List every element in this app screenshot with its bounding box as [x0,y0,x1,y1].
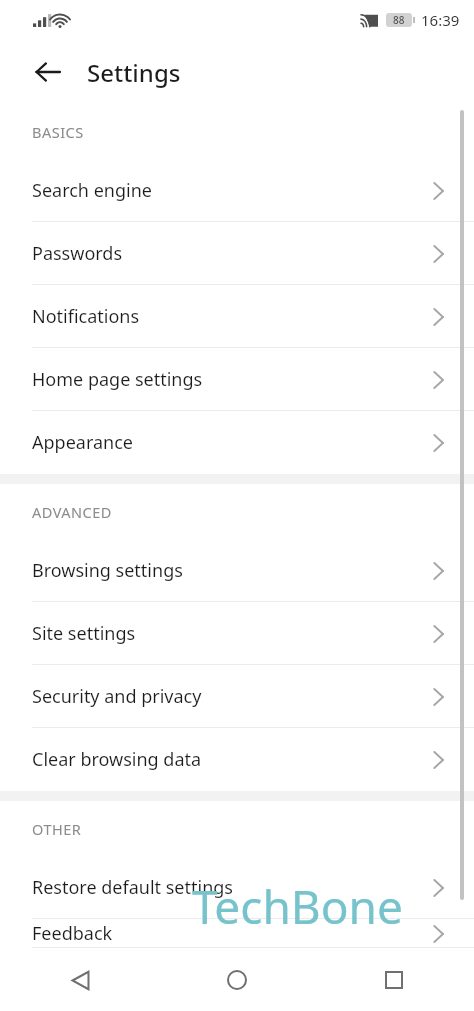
staticText: 16:39 [421,10,460,30]
staticText: Passwords [32,241,123,266]
button[interactable]: Security and privacy [0,665,474,728]
button[interactable]: Site settings [0,602,474,665]
button[interactable]: Home page settings [0,348,474,411]
staticText: Restore default settings [32,875,233,900]
button[interactable]: Appearance [0,411,474,474]
button[interactable]: Restore default settings [0,856,474,919]
staticText: OTHER [32,819,82,839]
button[interactable]: Back [22,46,74,98]
staticText: BASICS [32,122,84,142]
staticText: ADVANCED [32,502,112,522]
button[interactable]: Recent apps [370,956,418,1004]
button[interactable]: Back [56,956,104,1004]
staticText: Clear browsing data [32,747,202,772]
staticText: TechBone [192,875,403,938]
staticText: Notifications [32,304,140,329]
button[interactable]: Feedback [0,919,474,948]
staticText: Site settings [32,621,136,646]
button[interactable]: Search engine [0,159,474,222]
button[interactable]: Notifications [0,285,474,348]
staticText: Feedback [32,921,113,946]
button[interactable]: Home [213,956,261,1004]
button[interactable]: Clear browsing data [0,728,474,791]
button[interactable]: Passwords [0,222,474,285]
staticText: Browsing settings [32,558,183,583]
staticText: Security and privacy [32,684,202,709]
staticText: Appearance [32,430,133,455]
staticText: Settings [87,56,181,89]
staticText: Home page settings [32,367,203,392]
button[interactable]: Browsing settings [0,539,474,602]
staticText: Search engine [32,178,152,203]
staticText: 88 [393,13,405,27]
